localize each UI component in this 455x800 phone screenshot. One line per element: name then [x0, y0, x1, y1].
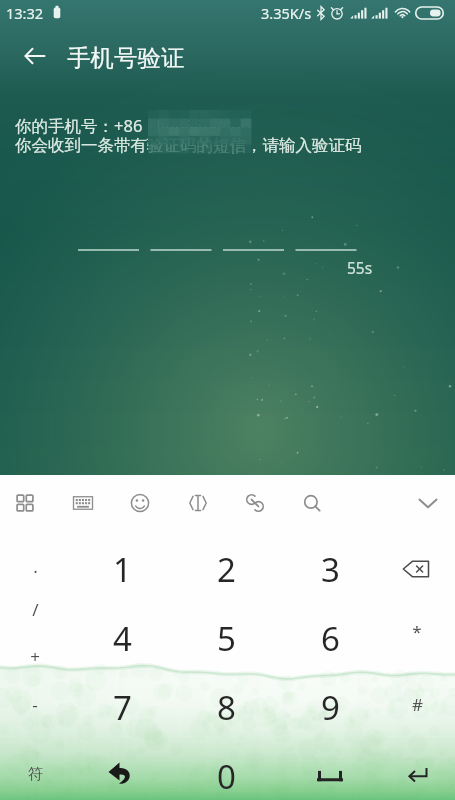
staticText: 0	[217, 754, 236, 799]
staticText: 9	[321, 685, 340, 730]
button[interactable]: Clipboard	[229, 477, 281, 529]
staticText: 2	[217, 547, 236, 592]
button[interactable]: Enter	[382, 745, 454, 800]
staticText: 3.35K/s	[261, 3, 312, 23]
button[interactable]: +	[2, 635, 68, 677]
staticText: /	[32, 598, 39, 621]
staticText: 8	[217, 685, 236, 730]
button[interactable]: 7	[74, 675, 170, 739]
staticText: +	[30, 645, 40, 668]
staticText: 6	[321, 616, 340, 661]
button[interactable]: Back	[8, 34, 62, 78]
button[interactable]: 8	[178, 675, 274, 739]
button[interactable]: Hide keyboard	[401, 477, 455, 529]
button[interactable]: Symbol panel	[0, 477, 51, 529]
staticText: 手机号验证	[67, 43, 185, 73]
button[interactable]: *	[381, 606, 453, 656]
button[interactable]: Shift	[76, 743, 166, 800]
button[interactable]: 9	[282, 675, 378, 739]
button[interactable]: Search	[286, 477, 338, 529]
staticText: 符	[28, 765, 43, 784]
button[interactable]: Backspace	[381, 539, 453, 599]
button[interactable]: 6	[282, 606, 378, 670]
staticText: -	[32, 693, 38, 716]
button[interactable]: /	[2, 588, 68, 630]
button[interactable]: Space	[285, 745, 375, 800]
staticText: 7	[113, 685, 132, 730]
button[interactable]: 0	[178, 744, 274, 800]
staticText: *	[412, 620, 422, 643]
staticText: 5	[217, 616, 236, 661]
button[interactable]: 5	[178, 606, 274, 670]
button[interactable]: .	[2, 545, 68, 587]
staticText: #	[412, 693, 423, 716]
staticText: 4	[113, 616, 132, 661]
staticText: .	[33, 555, 38, 578]
staticText: 13:32	[6, 3, 44, 23]
button[interactable]: Emoji	[114, 477, 166, 529]
staticText: 55s	[347, 257, 373, 278]
button[interactable]: 1	[74, 537, 170, 601]
button[interactable]: 3	[282, 537, 378, 601]
button[interactable]: 4	[74, 606, 170, 670]
staticText: 你的手机号：+86 18888888888	[15, 114, 251, 137]
button[interactable]: 2	[178, 537, 274, 601]
button[interactable]: #	[381, 679, 453, 729]
button[interactable]: Move cursor	[172, 477, 224, 529]
staticText: 3	[321, 547, 340, 592]
staticText: 1	[113, 547, 132, 592]
button[interactable]: Keyboard layout	[57, 477, 109, 529]
button[interactable]: -	[2, 683, 68, 725]
staticText: 你会收到一条带有验证码的短信，请输入验证码	[15, 135, 362, 156]
button[interactable]: 符	[2, 749, 68, 799]
